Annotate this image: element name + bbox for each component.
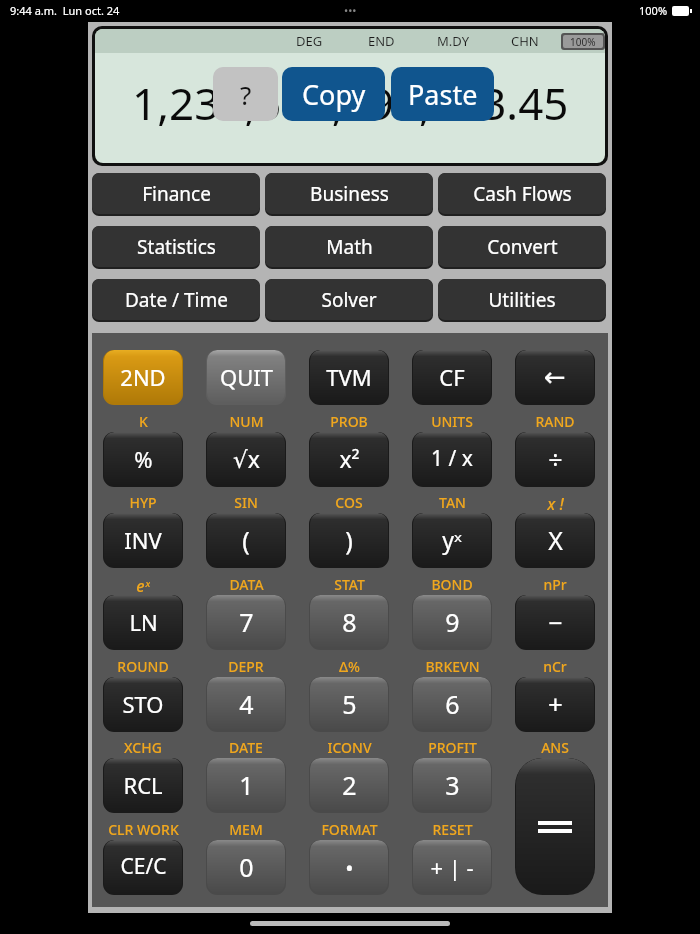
button[interactable]: 2 (309, 758, 389, 813)
button[interactable]: Solver (265, 279, 433, 322)
button[interactable]: 0 (206, 840, 286, 895)
button[interactable]: + | - (412, 840, 492, 895)
staticText: TAN (439, 493, 466, 511)
button[interactable]: yˣ (412, 513, 492, 568)
button[interactable]: 7 (206, 595, 286, 650)
button[interactable]: 4 (206, 677, 286, 732)
button[interactable]: 6 (412, 677, 492, 732)
staticText: X (548, 523, 563, 557)
staticText: RCL (123, 770, 163, 800)
staticText: ? (240, 77, 252, 112)
staticText: 100% (570, 35, 596, 48)
staticText: 8 (342, 605, 357, 639)
button[interactable]: RCL (103, 758, 183, 813)
button[interactable]: Cash Flows (438, 173, 606, 216)
staticText: DEG (296, 32, 323, 50)
button[interactable]: 1 (206, 758, 286, 813)
button[interactable]: TVM (309, 350, 389, 405)
button[interactable]: √x (206, 432, 286, 487)
staticText: MEM (229, 820, 263, 838)
staticText: 3 (445, 768, 460, 802)
staticText: COS (335, 493, 363, 511)
staticText: BRKEVN (425, 657, 480, 675)
button[interactable]: ) (309, 513, 389, 568)
staticText: END (368, 32, 395, 50)
button[interactable]: Convert (438, 226, 606, 269)
button[interactable]: 9 (412, 595, 492, 650)
staticText: 1,234,567,890,123.45 (132, 73, 569, 133)
staticText: ÷ (548, 442, 563, 476)
staticText: yˣ (442, 524, 462, 555)
staticText: RAND (535, 412, 575, 430)
staticText: 2ND (120, 362, 166, 392)
staticText: K (139, 412, 148, 430)
button[interactable]: % (103, 432, 183, 487)
button[interactable]: Business (265, 173, 433, 216)
staticText: 100% (639, 3, 668, 18)
staticText: BOND (431, 575, 473, 593)
staticText: Convert (487, 234, 558, 260)
staticText: INV (124, 525, 162, 555)
staticText: % (134, 444, 153, 474)
staticText: XCHG (124, 738, 162, 756)
button[interactable]: Utilities (438, 279, 606, 322)
button[interactable]: ( (206, 513, 286, 568)
staticText: − (548, 605, 563, 639)
staticText: CLR WORK (108, 820, 179, 838)
button[interactable]: 3 (412, 758, 492, 813)
button[interactable]: 2ND (103, 350, 183, 405)
staticText: 9 (445, 605, 460, 639)
button[interactable]: CF (412, 350, 492, 405)
staticText: 1 (239, 768, 254, 802)
staticText: + (548, 686, 563, 721)
staticText: NUM (229, 412, 264, 430)
button[interactable]: Math (265, 226, 433, 269)
staticText: FORMAT (321, 820, 378, 838)
staticText: CHN (511, 32, 539, 50)
button[interactable]: CE/C (103, 840, 183, 895)
staticText: UNITS (431, 412, 473, 430)
button[interactable]: 1 / x (412, 432, 492, 487)
button[interactable]: Equals (515, 758, 595, 895)
button[interactable]: QUIT (206, 350, 286, 405)
button[interactable]: 5 (309, 677, 389, 732)
button[interactable]: + (515, 677, 595, 732)
staticText: 9:44 a.m. Lun oct. 24 (10, 3, 120, 18)
button[interactable]: ? (213, 67, 278, 121)
staticText: 2 (342, 768, 357, 802)
staticText: LN (129, 607, 158, 637)
button[interactable]: Backspace (515, 350, 595, 405)
staticText: HYP (129, 493, 157, 511)
button[interactable]: LN (103, 595, 183, 650)
staticText: x ! (547, 493, 564, 511)
button[interactable]: Finance (92, 173, 260, 216)
button[interactable]: X (515, 513, 595, 568)
staticText: STAT (334, 575, 365, 593)
staticText: 6 (445, 687, 460, 721)
button[interactable]: x² (309, 432, 389, 487)
staticText: 7 (239, 605, 254, 639)
staticText: RESET (432, 820, 473, 838)
staticText: √x (233, 443, 260, 474)
staticText: PROB (330, 412, 368, 430)
staticText: ANS (541, 738, 569, 756)
staticText: ) (345, 523, 353, 557)
button[interactable]: STO (103, 677, 183, 732)
staticText: DATE (229, 738, 263, 756)
staticText: Utilities (488, 287, 556, 313)
staticText: Math (326, 234, 373, 260)
staticText: DATA (229, 575, 264, 593)
staticText: Date / Time (125, 287, 228, 313)
button[interactable]: INV (103, 513, 183, 568)
button[interactable]: 8 (309, 595, 389, 650)
staticText: SIN (234, 493, 258, 511)
staticText: PROFIT (428, 738, 477, 756)
button[interactable]: Statistics (92, 226, 260, 269)
button[interactable]: − (515, 595, 595, 650)
button[interactable]: • (309, 840, 389, 895)
staticText: + | - (430, 852, 474, 882)
button[interactable]: Date / Time (92, 279, 260, 322)
button[interactable]: Copy (282, 67, 385, 121)
button[interactable]: Paste (391, 67, 494, 121)
button[interactable]: ÷ (515, 432, 595, 487)
